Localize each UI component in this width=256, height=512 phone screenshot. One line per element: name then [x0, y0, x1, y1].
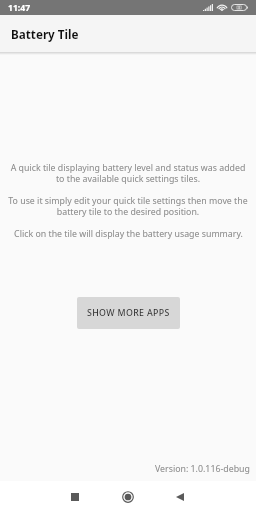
staticText: Battery Tile: [11, 26, 79, 42]
staticText: A quick tile displaying battery level an…: [8, 162, 248, 185]
button[interactable]: Back: [169, 481, 191, 512]
button[interactable]: Home: [117, 481, 139, 512]
staticText: Click on the tile will display the batte…: [14, 228, 243, 240]
staticText: SHOW MORE APPS: [87, 307, 170, 319]
staticText: Version: 1.0.116-debug: [155, 463, 250, 475]
staticText: 11:47: [8, 2, 31, 14]
button[interactable]: SHOW MORE APPS: [77, 297, 180, 329]
button[interactable]: Recent apps: [64, 481, 86, 512]
staticText: To use it simply edit your quick tile se…: [8, 195, 248, 218]
